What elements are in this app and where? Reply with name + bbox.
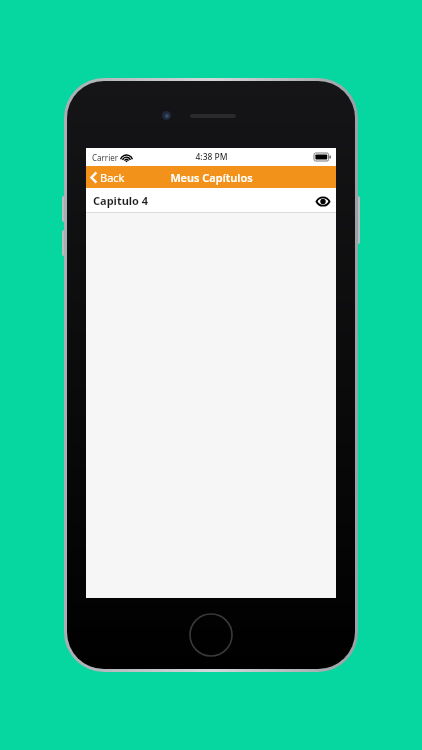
staticText: 4:38 PM <box>195 151 228 163</box>
button[interactable]: Back <box>86 168 133 187</box>
button[interactable]: Capitulo 4 <box>86 188 336 213</box>
staticText: Meus Capítulos <box>170 170 253 185</box>
other: Home <box>189 613 233 657</box>
staticText: Carrier <box>92 152 119 163</box>
staticText: Back <box>100 170 125 185</box>
staticText: Capitulo 4 <box>93 193 149 208</box>
button[interactable]: Visibility <box>315 194 331 208</box>
